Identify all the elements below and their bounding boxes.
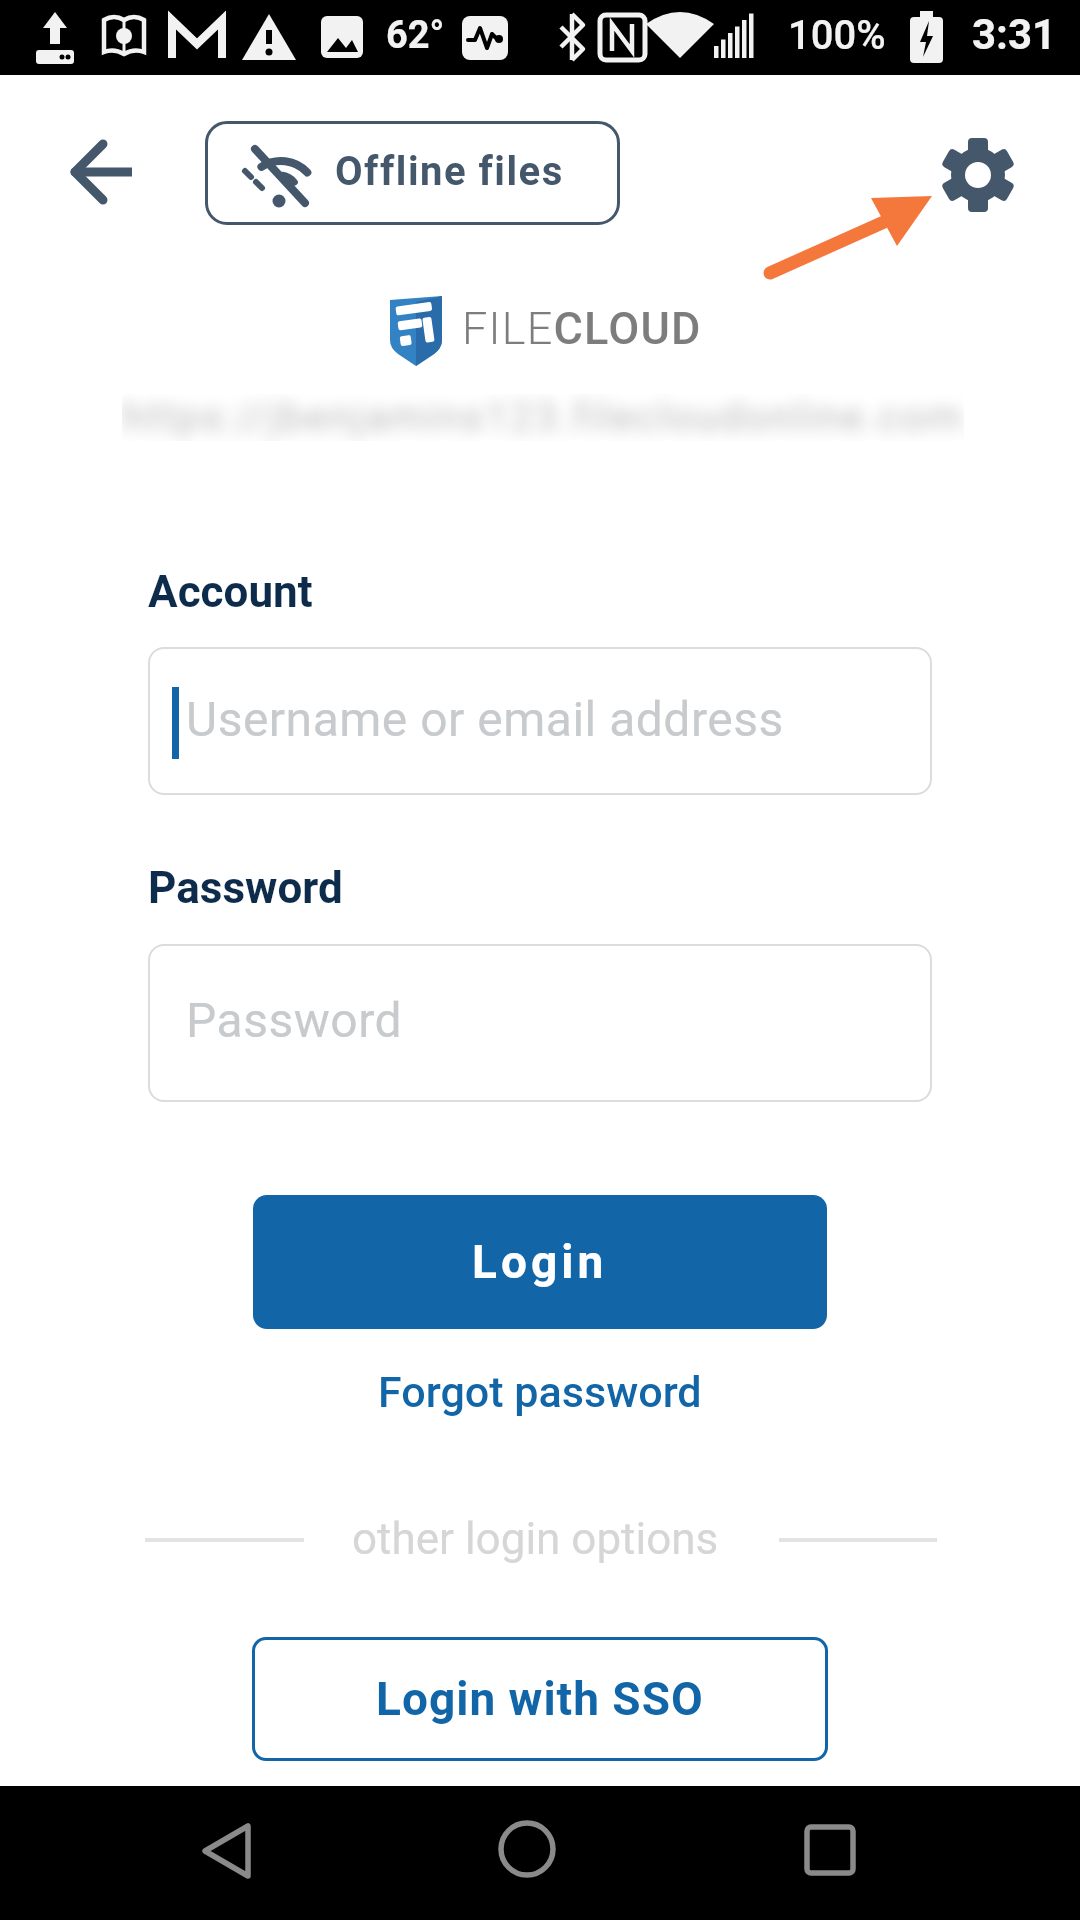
staticText: 62° (386, 13, 445, 58)
staticText: Login with SSO (376, 1672, 704, 1726)
button[interactable] (785, 1805, 875, 1895)
staticText: https://jbenjamins123.filecloudonline.co… (122, 394, 964, 441)
button[interactable]: Offline files (205, 121, 620, 225)
button[interactable]: Username or email address (148, 647, 932, 795)
staticText: Password (186, 992, 403, 1048)
button[interactable] (940, 137, 1016, 213)
button[interactable]: Login with SSO (252, 1637, 828, 1761)
button[interactable]: Forgot password (378, 1367, 702, 1417)
staticText: 3:31 (972, 10, 1057, 59)
staticText: FILECLOUD (462, 302, 702, 355)
staticText: Account (148, 566, 313, 618)
staticText: Offline files (335, 148, 564, 195)
staticText: Username or email address (186, 691, 784, 747)
button[interactable] (482, 1804, 572, 1894)
button[interactable] (60, 130, 150, 215)
button[interactable]: Password (148, 944, 932, 1102)
staticText: other login options (352, 1513, 719, 1565)
button[interactable] (180, 1806, 270, 1896)
staticText: 100% (788, 12, 886, 59)
staticText: Password (148, 862, 343, 914)
staticText: Login (472, 1235, 608, 1289)
button[interactable]: Login (253, 1195, 827, 1329)
